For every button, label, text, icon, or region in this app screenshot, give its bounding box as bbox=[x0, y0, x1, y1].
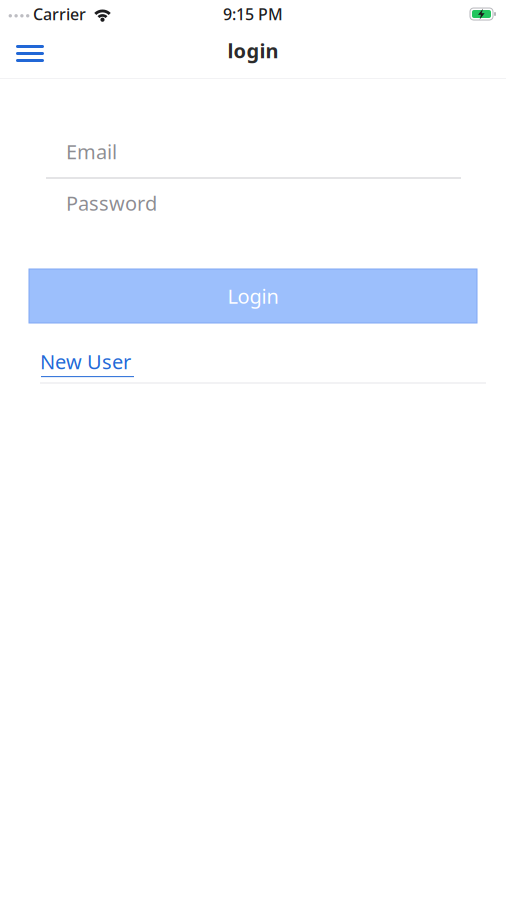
staticText: Login bbox=[227, 282, 278, 310]
button[interactable]: Login bbox=[29, 269, 477, 323]
staticText: login bbox=[227, 37, 278, 64]
staticText: New User bbox=[40, 348, 131, 375]
staticText: Carrier bbox=[33, 3, 86, 25]
button[interactable]: Menu bbox=[0, 37, 58, 70]
staticText: 9:15 PM bbox=[223, 3, 283, 25]
staticText: Email bbox=[66, 138, 117, 165]
button[interactable]: New User bbox=[40, 352, 135, 373]
staticText: Password bbox=[66, 189, 157, 217]
